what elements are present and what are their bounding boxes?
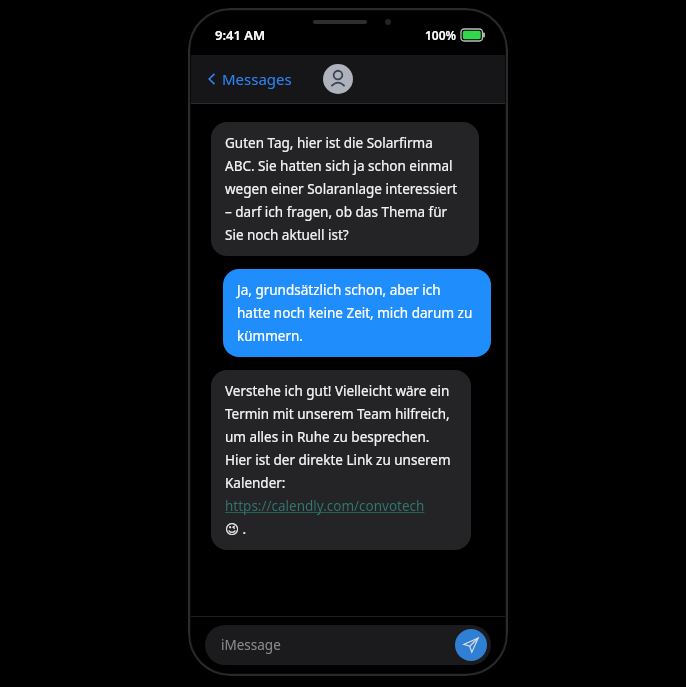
button[interactable]: iMessage bbox=[205, 625, 491, 665]
staticText: Messages bbox=[222, 69, 292, 89]
button[interactable]: Contact profile bbox=[323, 64, 353, 94]
button[interactable]: Verstehe ich gut! Vielleicht wäre ein Te… bbox=[211, 370, 471, 550]
button[interactable]: Send bbox=[455, 629, 487, 661]
staticText: iMessage bbox=[221, 636, 281, 654]
staticText: Guten Tag, hier ist die Solarfirma ABC. … bbox=[225, 134, 465, 244]
staticText: 100% bbox=[425, 27, 457, 43]
button[interactable]: Messages bbox=[207, 69, 292, 89]
staticText: Ja, grundsätzlich schon, aber ich hatte … bbox=[237, 281, 477, 345]
staticText: Verstehe ich gut! Vielleicht wäre ein Te… bbox=[225, 382, 457, 538]
button[interactable]: Ja, grundsätzlich schon, aber ich hatte … bbox=[223, 269, 491, 357]
button[interactable]: Guten Tag, hier ist die Solarfirma ABC. … bbox=[211, 122, 479, 256]
staticText: 9:41 AM bbox=[215, 26, 266, 44]
